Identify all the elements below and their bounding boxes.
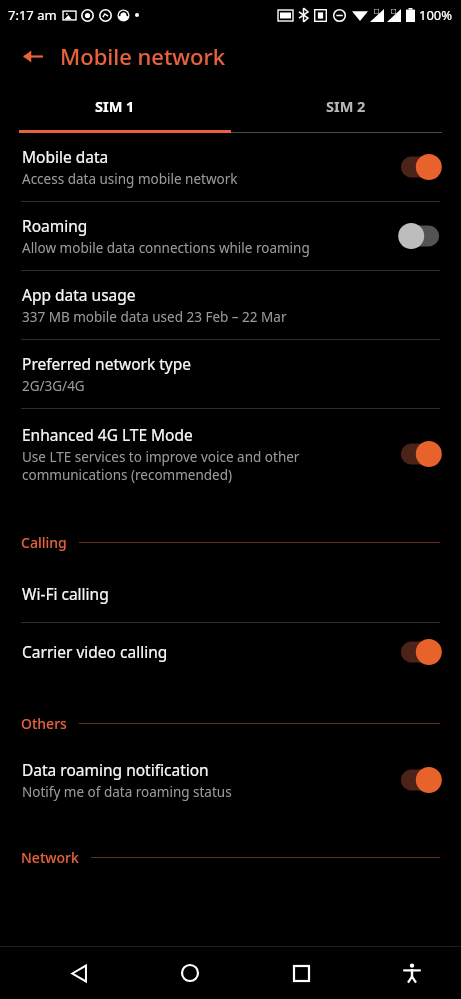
- button[interactable]: Roaming: [0, 202, 461, 270]
- staticText: SIM 2: [326, 96, 366, 116]
- button[interactable]: Carrier video calling: [0, 623, 461, 680]
- staticText: Notify me of data roaming status: [22, 783, 232, 801]
- button[interactable]: Toggle on: [396, 639, 444, 665]
- staticText: Enhanced 4G LTE Mode: [22, 424, 193, 445]
- staticText: 100%: [419, 6, 453, 24]
- staticText: 7:17 am: [8, 6, 57, 24]
- staticText: SIM 1: [95, 96, 135, 116]
- button[interactable]: Preferred network type: [0, 340, 461, 408]
- staticText: 2G/3G/4G: [22, 377, 85, 395]
- button[interactable]: Recent apps: [277, 949, 325, 997]
- staticText: 337 MB mobile data used 23 Feb – 22 Mar: [22, 308, 287, 326]
- button[interactable]: Back: [10, 34, 54, 78]
- staticText: Roaming: [22, 215, 88, 236]
- button[interactable]: Toggle on: [396, 154, 444, 180]
- button[interactable]: Mobile data: [0, 133, 461, 201]
- button[interactable]: Accessibility: [388, 949, 436, 997]
- button[interactable]: Home: [166, 949, 214, 997]
- staticText: Access data using mobile network: [22, 170, 238, 188]
- button[interactable]: Enhanced 4G LTE Mode: [0, 409, 461, 499]
- button[interactable]: Toggle on: [396, 767, 444, 793]
- staticText: Use LTE services to improve voice and ot…: [22, 448, 300, 484]
- staticText: App data usage: [22, 284, 136, 305]
- button[interactable]: Toggle on: [396, 441, 444, 467]
- staticText: Network: [21, 848, 79, 867]
- staticText: Data roaming notification: [22, 759, 209, 780]
- button[interactable]: SIM 1: [0, 82, 230, 130]
- staticText: Mobile data: [22, 146, 109, 167]
- staticText: Calling: [21, 533, 67, 552]
- staticText: Preferred network type: [22, 353, 192, 374]
- button[interactable]: SIM 2: [230, 82, 461, 130]
- button[interactable]: App data usage: [0, 271, 461, 339]
- button[interactable]: Toggle off: [396, 223, 444, 249]
- staticText: Carrier video calling: [22, 641, 168, 662]
- button[interactable]: Data roaming notification: [0, 746, 461, 814]
- staticText: Mobile network: [60, 41, 226, 71]
- button[interactable]: Wi-Fi calling: [0, 565, 461, 622]
- staticText: Allow mobile data connections while roam…: [22, 239, 310, 257]
- staticText: Wi-Fi calling: [22, 583, 109, 604]
- button[interactable]: Back: [55, 949, 103, 997]
- staticText: Others: [21, 714, 67, 733]
